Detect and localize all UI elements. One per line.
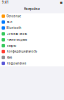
staticText: ▮▮ bbox=[60, 1, 62, 4]
staticText: Wi-Fi bbox=[7, 20, 13, 24]
staticText: Батарея bbox=[7, 44, 17, 47]
staticText: Настройки bbox=[24, 7, 40, 11]
button[interactable]: Основные bbox=[0, 13, 64, 19]
button[interactable]: Батарея bbox=[0, 43, 64, 49]
button[interactable]: Тема bbox=[0, 54, 64, 60]
staticText: Тема bbox=[7, 56, 12, 59]
staticText: Bluetooth bbox=[7, 26, 22, 30]
staticText: Режим модема bbox=[7, 38, 27, 41]
staticText: Основные bbox=[7, 14, 21, 18]
button[interactable]: Уведомления bbox=[0, 60, 64, 66]
button[interactable]: Сотовая связь bbox=[0, 31, 64, 37]
button[interactable]: Bluetooth bbox=[0, 25, 64, 31]
button[interactable]: Конфиденциальность bbox=[0, 49, 64, 54]
button[interactable]: Режим модема bbox=[0, 37, 64, 43]
staticText: 9:41 bbox=[2, 1, 9, 4]
staticText: Конфиденциальность bbox=[7, 50, 37, 53]
staticText: Сотовая связь bbox=[7, 32, 27, 36]
staticText: Уведомления bbox=[7, 62, 27, 65]
button[interactable]: Wi-Fi bbox=[0, 19, 64, 25]
